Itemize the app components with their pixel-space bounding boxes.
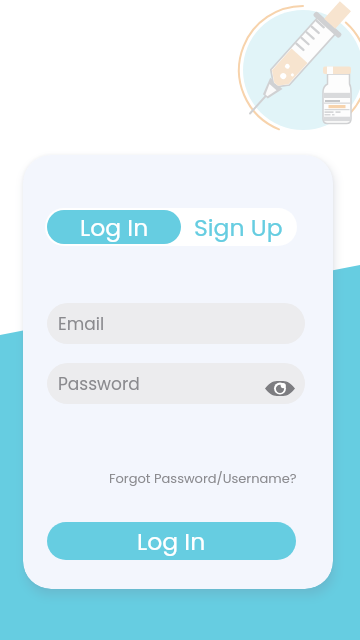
staticText: Forgot Password/Username? xyxy=(109,469,297,487)
button[interactable]: Forgot Password/Username? xyxy=(109,469,297,487)
staticText: Email xyxy=(58,312,105,336)
staticText: Log In xyxy=(80,211,149,244)
staticText: Password xyxy=(58,372,140,396)
staticText: Log In xyxy=(137,525,206,558)
button[interactable]: Sign Up xyxy=(180,208,297,246)
button[interactable]: Password xyxy=(47,363,305,404)
button[interactable]: Log In xyxy=(47,210,181,244)
staticText: Sign Up xyxy=(194,211,283,244)
button[interactable]: Log In xyxy=(47,522,296,560)
button[interactable]: Email xyxy=(47,303,305,344)
button[interactable]: Show password xyxy=(263,379,297,398)
